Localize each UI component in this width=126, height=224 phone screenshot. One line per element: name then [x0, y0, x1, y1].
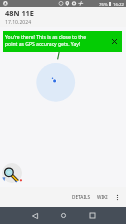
button[interactable]: You're there! This is as close to the po…: [3, 31, 122, 52]
staticText: 17.10.2024: [5, 19, 32, 26]
staticText: 16:22: [113, 1, 124, 7]
button[interactable]: WIKI: [94, 189, 111, 205]
staticText: You're there! This is as close to the po…: [5, 34, 97, 47]
button[interactable]: More options: [111, 191, 124, 204]
staticText: 48N 11E: [5, 8, 34, 18]
button[interactable]: Search: [2, 163, 22, 183]
button[interactable]: Recents: [89, 207, 96, 224]
staticText: DETAILS: [72, 194, 91, 200]
staticText: WIKI: [97, 194, 108, 200]
staticText: 76%: [99, 1, 108, 7]
button[interactable]: DETAILS: [69, 189, 94, 205]
button[interactable]: Back: [31, 207, 38, 224]
button[interactable]: Close: [109, 36, 120, 47]
button[interactable]: Home: [60, 207, 67, 224]
